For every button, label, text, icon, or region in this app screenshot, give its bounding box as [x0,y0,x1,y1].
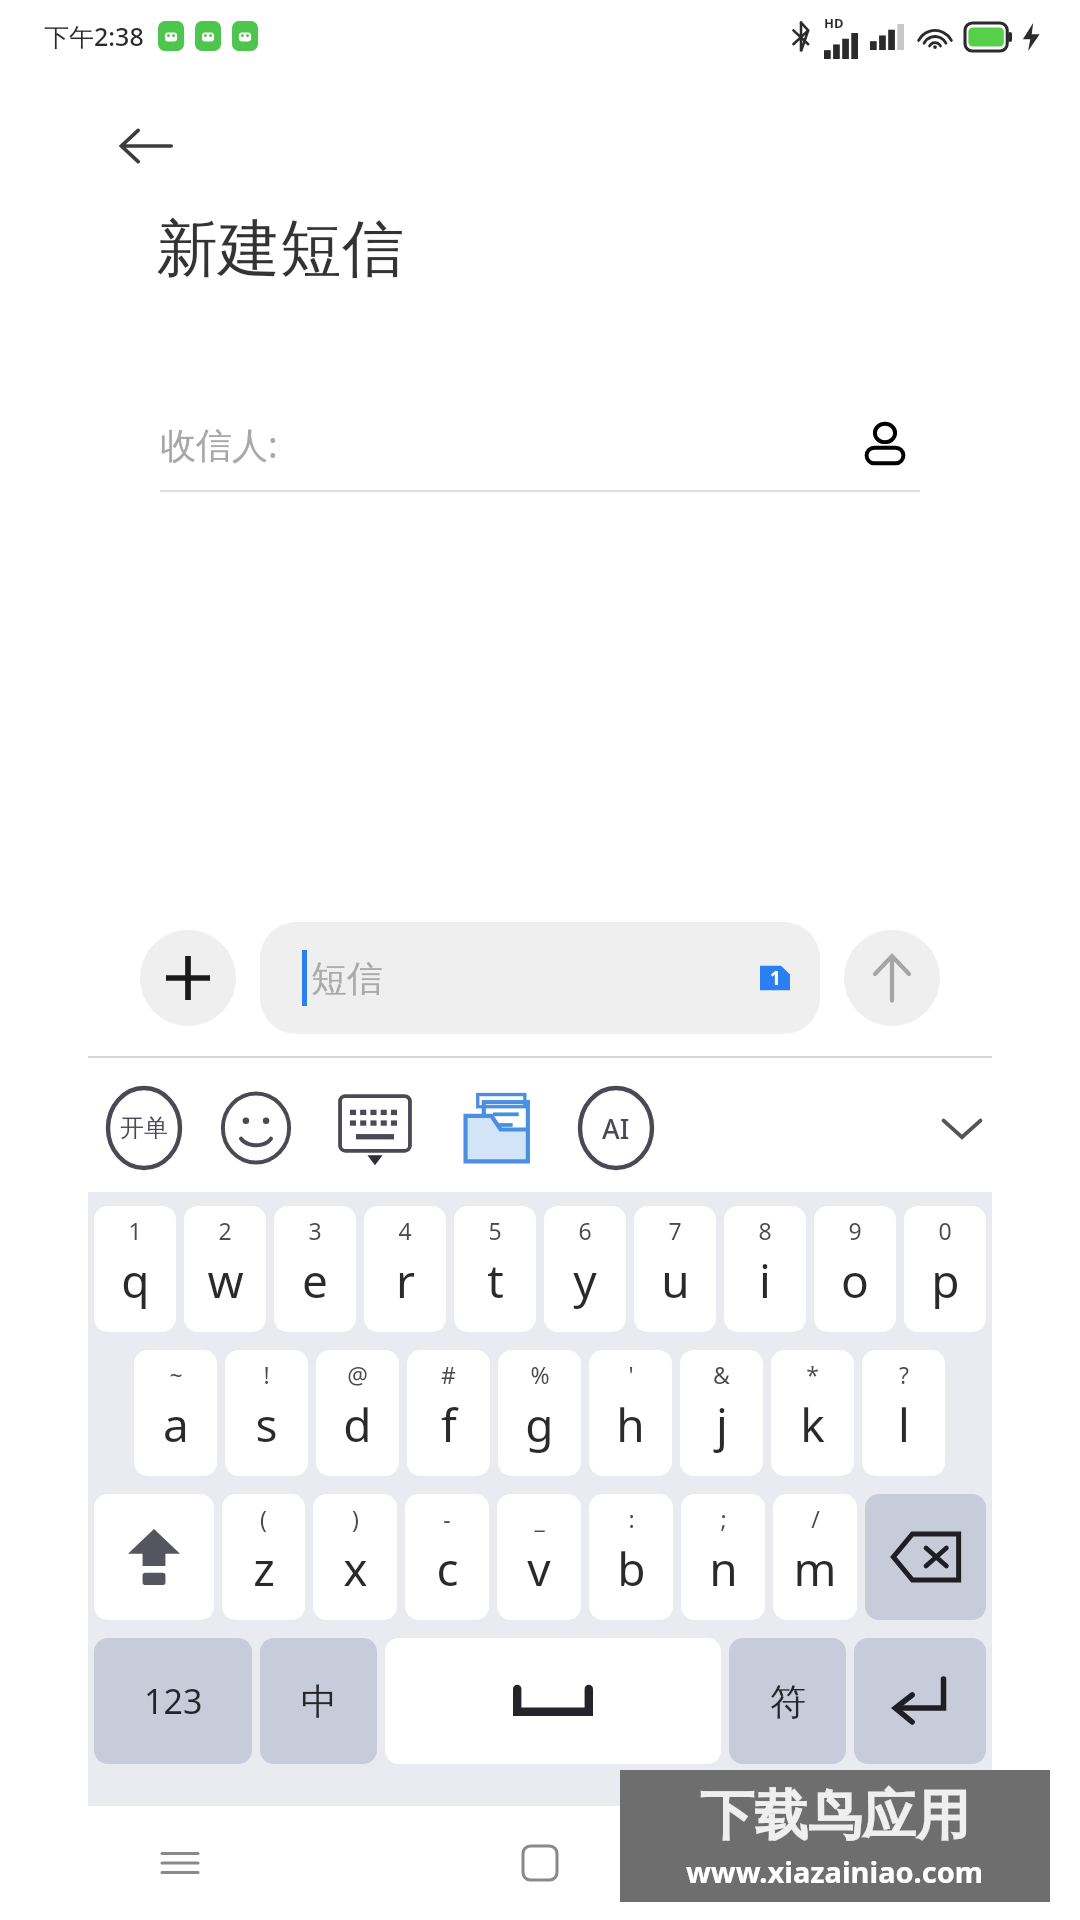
button[interactable]: 3 [274,1206,356,1332]
button[interactable]: 5 [454,1206,536,1332]
button[interactable]: 表情 [218,1088,294,1168]
button[interactable]: ; [681,1494,765,1620]
staticText: / [811,1503,820,1534]
staticText: u [661,1249,690,1312]
button[interactable]: 开单 [108,1088,180,1168]
button[interactable]: ? [862,1350,945,1476]
button[interactable]: AI [580,1088,652,1168]
staticText: 2 [218,1215,232,1246]
staticText: 4 [398,1215,412,1246]
button[interactable]: 键盘切换 [332,1085,418,1171]
button[interactable]: 8 [724,1206,806,1332]
staticText: 1 [128,1215,142,1246]
staticText: 1 [770,965,781,991]
button[interactable]: 返回 [720,1806,1080,1920]
button[interactable]: * [771,1350,854,1476]
button[interactable]: 6 [544,1206,626,1332]
staticText: & [713,1359,730,1390]
button[interactable]: ' [589,1350,672,1476]
staticText: o [841,1249,869,1312]
button[interactable]: & [680,1350,763,1476]
button[interactable]: 返回 [108,108,184,184]
button[interactable]: 收起 [924,1090,1000,1166]
staticText: p [931,1249,960,1312]
button[interactable]: 9 [814,1206,896,1332]
button[interactable]: ~ [134,1350,217,1476]
button[interactable]: 剪贴板 [456,1085,542,1171]
staticText: ? [899,1359,909,1390]
staticText: c [436,1537,459,1600]
staticText: n [709,1537,738,1600]
button[interactable]: - [405,1494,489,1620]
staticText: www.xiazainiao.com [686,1852,984,1891]
staticText: q [121,1249,150,1312]
staticText: 7 [668,1215,682,1246]
staticText: t [487,1249,504,1312]
staticText: b [617,1537,646,1600]
staticText: 8 [758,1215,772,1246]
button[interactable]: 空格 [385,1638,721,1764]
button[interactable]: 发送 [844,930,940,1026]
staticText: 9 [848,1215,862,1246]
staticText: e [302,1249,328,1312]
staticText: h [616,1393,645,1456]
button[interactable]: 123 [94,1638,252,1764]
staticText: ( [260,1503,267,1534]
staticText: HD [824,14,844,32]
staticText: d [343,1393,372,1456]
button[interactable]: ! [225,1350,308,1476]
button[interactable]: @ [316,1350,399,1476]
button[interactable]: # [407,1350,490,1476]
staticText: ' [628,1359,634,1390]
staticText: 123 [144,1678,203,1724]
button[interactable]: 添加附件 [140,930,236,1026]
staticText: j [716,1393,728,1456]
staticText: @ [347,1359,368,1390]
button[interactable]: 中 [260,1638,377,1764]
staticText: g [525,1393,554,1456]
staticText: % [530,1359,550,1390]
staticText: l [898,1393,910,1456]
staticText: v [527,1537,551,1600]
staticText: m [793,1537,837,1600]
button[interactable]: % [498,1350,581,1476]
staticText: 下午2:38 [44,19,144,53]
button[interactable]: : [589,1494,673,1620]
staticText: 6 [578,1215,592,1246]
button[interactable]: 最近任务 [0,1806,360,1920]
button[interactable]: 回车 [854,1638,986,1764]
staticText: f [441,1393,457,1456]
button[interactable]: / [773,1494,857,1620]
staticText: y [573,1249,597,1312]
button[interactable]: ( [222,1494,305,1620]
button[interactable]: 收信人: [160,398,920,490]
staticText: 新建短信 [156,210,404,288]
staticText: _ [534,1503,545,1534]
staticText: ; [720,1503,727,1534]
button[interactable]: 大写切换 [94,1494,214,1620]
button[interactable]: ) [313,1494,397,1620]
staticText: x [343,1537,368,1600]
button[interactable]: 0 [904,1206,986,1332]
button[interactable]: 删除 [865,1494,986,1620]
button[interactable]: 1 [94,1206,176,1332]
staticText: - [443,1503,451,1534]
staticText: : [628,1503,635,1534]
staticText: 中 [301,1679,337,1724]
staticText: * [806,1359,819,1390]
staticText: w [207,1249,244,1312]
button[interactable]: 主页 [360,1806,720,1920]
button[interactable]: 选择联系人 [850,409,920,479]
staticText: 收信人: [160,420,278,469]
staticText: i [759,1249,771,1312]
button[interactable]: _ [497,1494,581,1620]
button[interactable]: 2 [184,1206,266,1332]
staticText: ! [263,1359,270,1390]
button[interactable]: 4 [364,1206,446,1332]
staticText: 0 [938,1215,952,1246]
button[interactable]: 7 [634,1206,716,1332]
button[interactable]: 短信 [260,922,820,1034]
button[interactable]: 符 [729,1638,846,1764]
staticText: ) [352,1503,359,1534]
staticText: 3 [308,1215,322,1246]
